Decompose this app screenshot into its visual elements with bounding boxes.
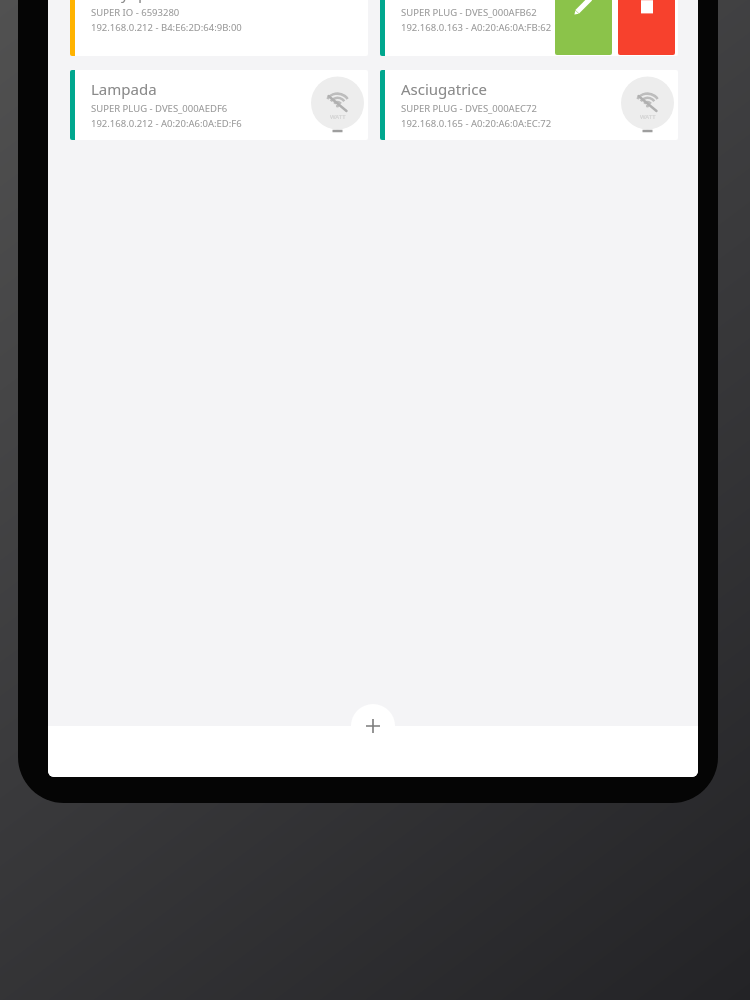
staticText: 192.168.0.163 - A0:20:A6:0A:FB:62 [401,21,552,34]
staticText: WATT [640,113,656,121]
staticText: 192.168.0.212 - A0:20:A6:0A:ED:F6 [91,117,242,130]
staticText: WATT [330,113,346,121]
button[interactable]: Edit [555,0,612,55]
button[interactable]: Lampada [70,70,368,140]
button[interactable]: Relay quadro elettrico [70,0,368,56]
button[interactable]: Lavatrice [380,0,678,56]
staticText: SUPER IO - 6593280 [91,6,180,19]
staticText: SUPER PLUG - DVES_000AFB62 [401,6,537,19]
staticText: Relay quadro elettrico [91,0,246,3]
staticText: 192.168.0.165 - A0:20:A6:0A:EC:72 [401,117,552,130]
staticText: SUPER PLUG - DVES_000AEC72 [401,102,537,115]
staticText: 192.168.0.212 - B4:E6:2D:64:9B:00 [91,21,242,34]
button[interactable]: Add device [351,704,395,748]
staticText: Lampada [91,79,157,99]
staticText: Asciugatrice [401,79,487,99]
button[interactable]: Asciugatrice [380,70,678,140]
staticText: SUPER PLUG - DVES_000AEDF6 [91,102,228,115]
button[interactable]: Delete [618,0,675,55]
